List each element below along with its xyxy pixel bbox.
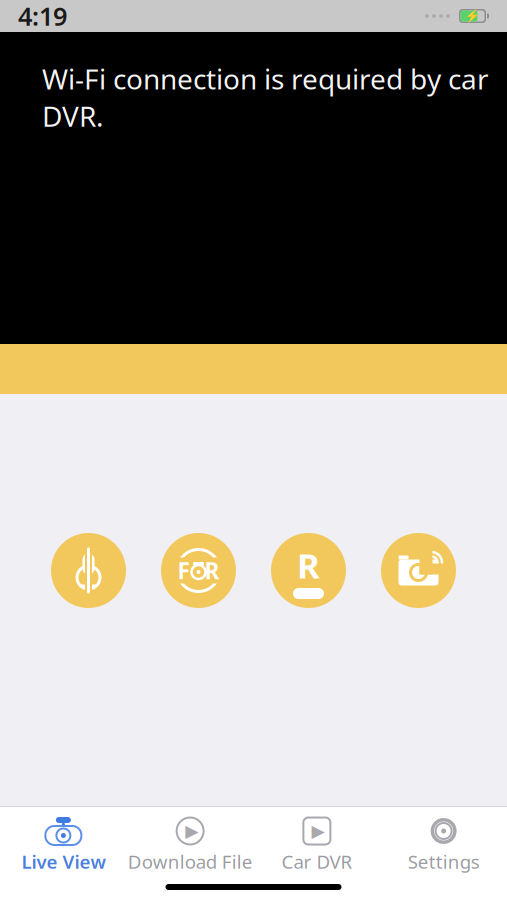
staticText: ▶ <box>185 821 198 841</box>
staticText: Settings <box>408 849 480 874</box>
button[interactable]: Live View <box>0 814 127 876</box>
button[interactable]: ▶ <box>253 814 380 876</box>
button[interactable]: Front camera <box>161 533 236 608</box>
staticText: ▶ <box>311 821 324 841</box>
button[interactable]: Snapshot <box>381 533 456 608</box>
button[interactable]: Mute microphone <box>51 533 126 608</box>
button[interactable]: Record <box>271 533 346 608</box>
staticText: ⚡ <box>465 9 480 23</box>
button[interactable]: ▶ <box>127 814 254 876</box>
staticText: R <box>297 542 320 588</box>
staticText: 4:19 <box>18 0 67 33</box>
staticText: Wi-Fi connection is required by car DVR. <box>42 60 489 134</box>
staticText: Download File <box>128 849 253 874</box>
staticText: R <box>204 555 219 585</box>
staticText: Live View <box>21 849 105 874</box>
staticText: Car DVR <box>281 849 352 874</box>
button[interactable]: Settings <box>380 814 507 876</box>
staticText: F <box>177 555 189 585</box>
